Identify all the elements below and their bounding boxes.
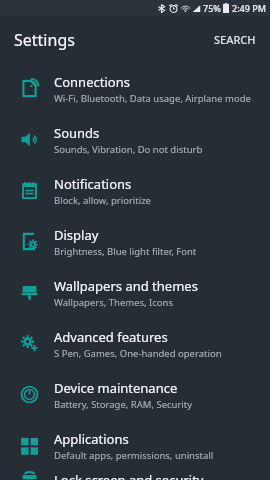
button[interactable]: Sounds bbox=[0, 114, 270, 165]
button[interactable]: Device maintenance bbox=[0, 369, 270, 420]
staticText: Block, allow, prioritize bbox=[54, 194, 151, 207]
staticText: Device maintenance bbox=[54, 379, 178, 397]
button[interactable]: Display bbox=[0, 216, 270, 267]
button[interactable]: Wallpapers and themes bbox=[0, 267, 270, 318]
staticText: S Pen, Games, One-handed operation bbox=[54, 347, 222, 360]
staticText: 2:49 PM bbox=[232, 2, 266, 14]
staticText: Default apps, permissions, uninstall bbox=[54, 449, 214, 462]
staticText: Sounds bbox=[54, 124, 100, 142]
staticText: Wallpapers, Themes, Icons bbox=[54, 296, 174, 309]
button[interactable]: Connections bbox=[0, 63, 270, 114]
staticText: Wallpapers and themes bbox=[54, 277, 198, 295]
staticText: Notifications bbox=[54, 175, 132, 193]
staticText: SEARCH bbox=[214, 32, 256, 47]
staticText: Battery, Storage, RAM, Security bbox=[54, 398, 193, 411]
staticText: Display bbox=[54, 226, 99, 244]
button[interactable]: Notifications bbox=[0, 165, 270, 216]
staticText: Settings bbox=[14, 29, 75, 51]
staticText: Lock screen and security bbox=[54, 471, 204, 480]
button[interactable]: Lock screen and security bbox=[0, 471, 270, 480]
staticText: Connections bbox=[54, 73, 130, 91]
button[interactable]: SEARCH bbox=[200, 22, 270, 57]
staticText: Brightness, Blue light filter, Font bbox=[54, 245, 197, 258]
button[interactable]: Advanced features bbox=[0, 318, 270, 369]
staticText: Advanced features bbox=[54, 328, 168, 346]
staticText: Applications bbox=[54, 430, 129, 448]
staticText: Wi-Fi, Bluetooth, Data usage, Airplane m… bbox=[54, 92, 251, 105]
staticText: Sounds, Vibration, Do not disturb bbox=[54, 143, 203, 156]
button[interactable]: Applications bbox=[0, 420, 270, 471]
staticText: 75% bbox=[203, 2, 221, 14]
